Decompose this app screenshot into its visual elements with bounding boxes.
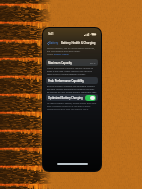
button[interactable]: Peak Performance Capability bbox=[46, 77, 98, 84]
staticText: Battery bbox=[49, 41, 59, 45]
staticText: Optimized Battery Charging bbox=[48, 96, 83, 100]
staticText: Device updates, like all rechargeable ba… bbox=[47, 47, 97, 53]
staticText: Peak Performance Capability bbox=[48, 79, 84, 83]
button[interactable]: Battery bbox=[46, 41, 60, 45]
staticText: To reduce battery ageing, iPhone learns … bbox=[47, 102, 97, 111]
staticText: Built-in dynamic software and hardware s… bbox=[47, 85, 97, 94]
button[interactable]: Battery Health bbox=[54, 53, 69, 56]
button[interactable]: Optimized Battery Charging toggle bbox=[85, 95, 96, 101]
staticText: 9:41 bbox=[48, 32, 54, 36]
staticText: Maximum Capacity bbox=[48, 61, 72, 65]
staticText: About bbox=[47, 53, 54, 56]
staticText: Battery Health & Charging bbox=[61, 41, 96, 45]
button[interactable]: Maximum Capacity bbox=[46, 59, 98, 66]
staticText: 80 % bbox=[90, 61, 96, 64]
button[interactable]: Optimized Battery Charging bbox=[46, 94, 98, 101]
staticText: This is a measure of battery capacity re… bbox=[47, 67, 97, 76]
